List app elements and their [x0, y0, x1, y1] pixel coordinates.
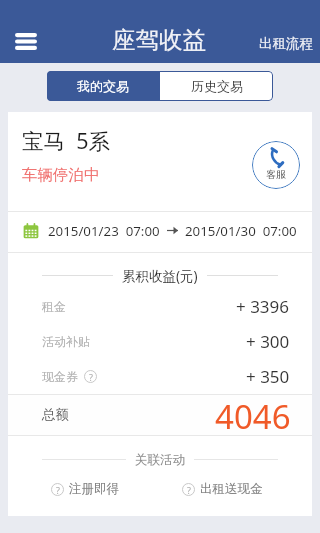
button[interactable]: 客服	[252, 141, 300, 189]
staticText: 2015/01/23 07:00	[48, 222, 160, 240]
staticText: + 3396	[236, 295, 290, 318]
staticText: 累积收益(元)	[122, 267, 198, 285]
button[interactable]: ?	[182, 481, 263, 497]
staticText: 出租送现金	[200, 481, 263, 497]
button[interactable]: Menu	[5, 19, 47, 61]
staticText: 2015/01/30 07:00	[185, 222, 297, 240]
staticText: 租金	[42, 299, 66, 314]
staticText: 关联活动	[135, 452, 185, 468]
button[interactable]: 历史交易	[160, 71, 273, 101]
staticText: 4046	[215, 394, 291, 434]
staticText: ?	[187, 484, 191, 496]
staticText: + 300	[246, 330, 290, 353]
staticText: 座驾收益	[112, 25, 206, 55]
staticText: 注册即得	[69, 481, 119, 497]
staticText: 客服	[266, 168, 286, 181]
button[interactable]: 出租流程	[259, 35, 313, 52]
staticText: 车辆停泊中	[22, 165, 100, 185]
staticText: 我的交易	[77, 78, 129, 94]
staticText: 现金券	[42, 369, 78, 384]
staticText: ?	[56, 484, 60, 496]
button[interactable]: 我的交易	[47, 71, 159, 101]
staticText: 历史交易	[191, 78, 243, 94]
button[interactable]: ?	[51, 481, 119, 497]
staticText: 宝马 5系	[22, 126, 110, 155]
staticText: 活动补贴	[42, 334, 90, 349]
staticText: ?	[89, 371, 93, 383]
staticText: + 350	[246, 365, 290, 388]
staticText: 出租流程	[259, 35, 313, 52]
staticText: 总额	[42, 406, 69, 423]
